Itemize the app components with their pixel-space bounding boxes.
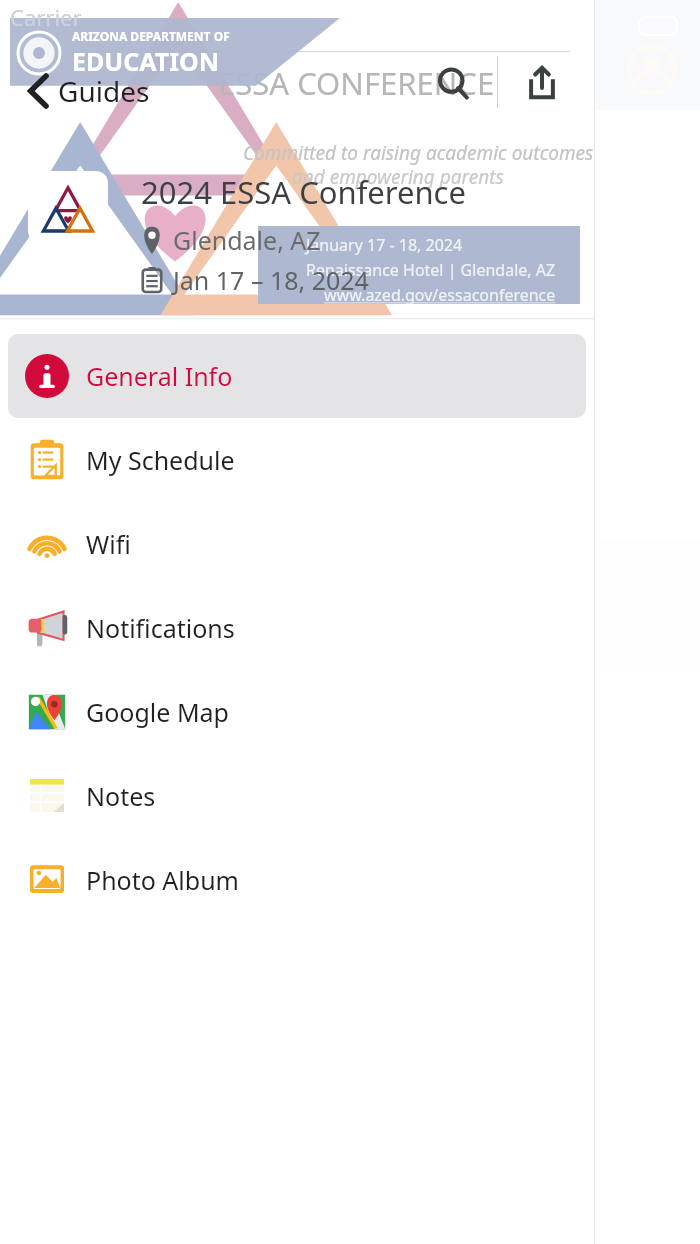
staticText: Jan 17 – 18, 2024 bbox=[173, 263, 369, 297]
staticText: Carrier bbox=[10, 2, 82, 32]
staticText: Google Map bbox=[86, 695, 229, 729]
staticText: My Schedule bbox=[86, 443, 235, 477]
button[interactable]: Search bbox=[428, 58, 480, 110]
button[interactable]: My Schedule bbox=[8, 418, 586, 502]
button[interactable]: Conference logo bbox=[28, 171, 108, 243]
staticText: ARIZONA DEPARTMENT OF bbox=[72, 28, 230, 44]
staticText: Committed to raising academic outcomes bbox=[243, 140, 594, 166]
button[interactable]: Notifications bbox=[8, 586, 586, 670]
button[interactable]: Google Map bbox=[8, 670, 586, 754]
staticText: General Info bbox=[86, 359, 233, 393]
staticText: ESSA CONFERENCE bbox=[218, 62, 495, 104]
button[interactable]: Photo Album bbox=[8, 838, 586, 922]
staticText: Guides bbox=[58, 72, 150, 110]
button[interactable]: Notes bbox=[8, 754, 586, 838]
staticText: es bbox=[10, 304, 31, 331]
staticText: Wifi bbox=[86, 527, 131, 561]
staticText: EDUCATION bbox=[72, 44, 220, 78]
button[interactable]: Wifi bbox=[8, 502, 586, 586]
staticText: January 17 - 18, 2024 bbox=[306, 234, 463, 256]
staticText: www.azed.gov/essaconference bbox=[324, 284, 556, 304]
button[interactable]: Guides bbox=[22, 68, 156, 114]
staticText: and empowering parents bbox=[292, 164, 504, 190]
staticText: Notifications bbox=[86, 611, 235, 645]
staticText: 2024 ESSA Conference bbox=[141, 171, 466, 213]
button[interactable]: General Info bbox=[8, 334, 586, 418]
staticText: Notes bbox=[86, 779, 156, 813]
staticText: res... bbox=[2, 785, 54, 816]
button[interactable]: Share bbox=[516, 56, 568, 108]
staticText: Glendale, AZ bbox=[173, 223, 321, 257]
staticText: Photo Album bbox=[86, 863, 239, 897]
staticText: Renaissance Hotel | Glendale, AZ bbox=[306, 259, 556, 281]
